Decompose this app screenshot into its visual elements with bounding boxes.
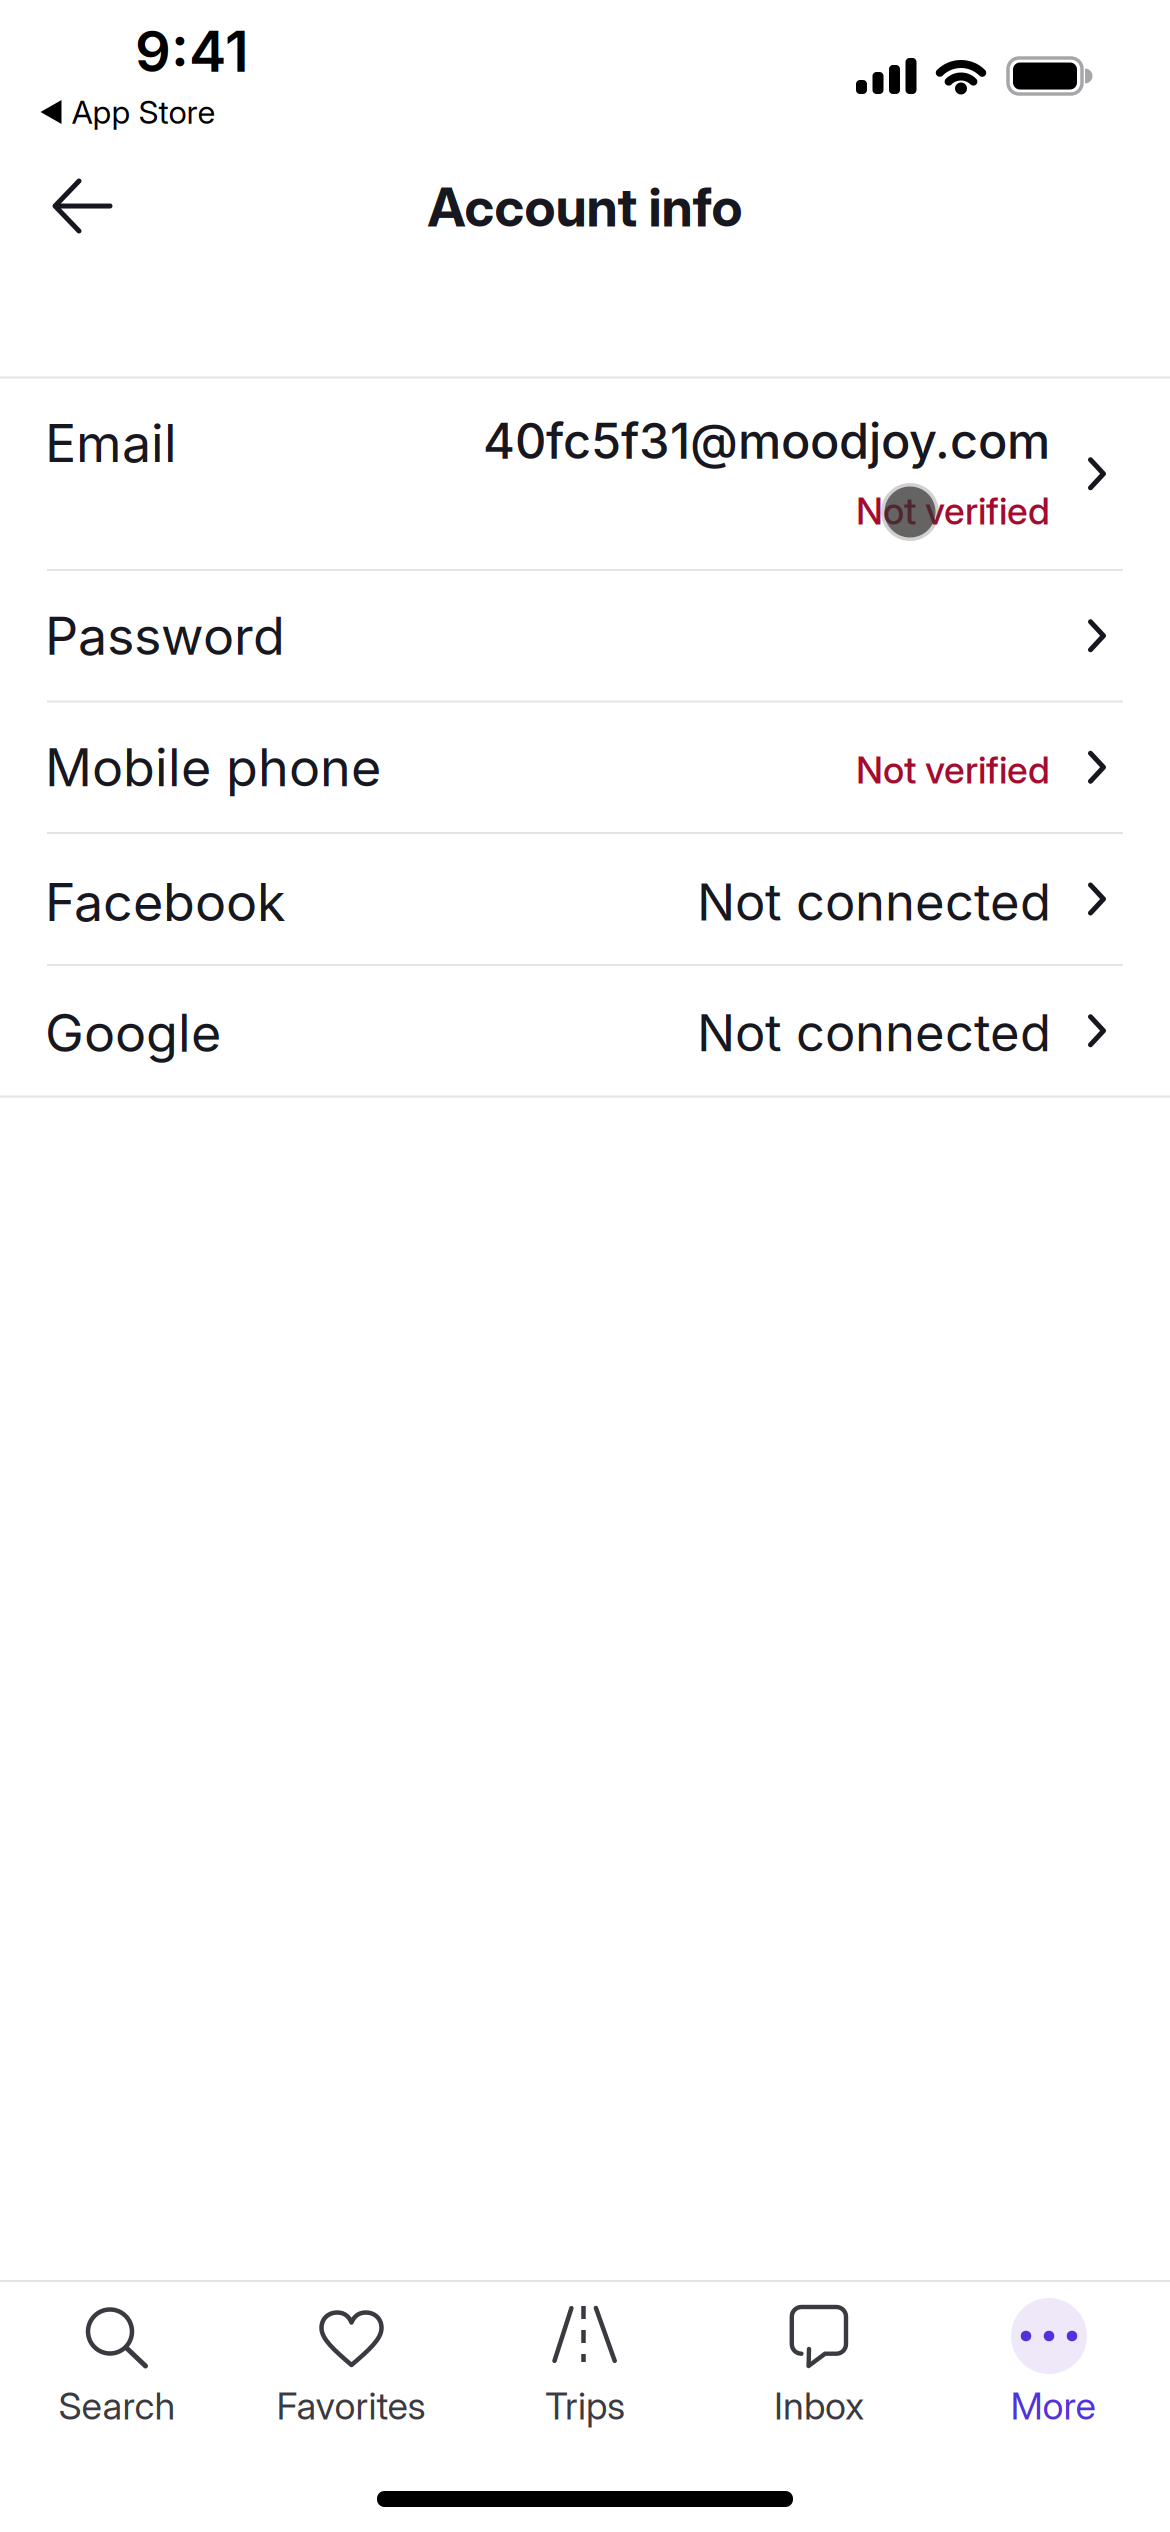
- button[interactable]: Password: [0, 570, 1170, 701]
- staticText: Not connected: [697, 1002, 1051, 1063]
- staticText: Inbox: [774, 2383, 864, 2429]
- staticText: 9:41: [135, 18, 249, 85]
- button[interactable]: Search: [0, 2281, 234, 2461]
- staticText: Email: [45, 411, 177, 474]
- button[interactable]: Facebook: [0, 833, 1170, 965]
- button[interactable]: Inbox: [702, 2281, 936, 2461]
- staticText: Mobile phone: [45, 736, 381, 799]
- staticText: App Store: [71, 93, 215, 131]
- button[interactable]: Back to App Store: [18, 84, 238, 140]
- staticText: Trips: [545, 2383, 625, 2429]
- button[interactable]: Favorites: [234, 2281, 468, 2461]
- button[interactable]: Trips: [468, 2281, 702, 2461]
- staticText: Facebook: [45, 870, 286, 933]
- staticText: Password: [45, 604, 285, 667]
- staticText: Not verified: [856, 488, 1050, 534]
- staticText: Not connected: [697, 871, 1051, 933]
- staticText: More: [1010, 2383, 1095, 2429]
- staticText: 40fc5f31@moodjoy.com: [483, 412, 1050, 470]
- staticText: Favorites: [276, 2383, 425, 2429]
- button[interactable]: Mobile phone: [0, 701, 1170, 833]
- staticText: Google: [45, 1001, 221, 1064]
- button[interactable]: Google: [0, 965, 1170, 1096]
- button[interactable]: Back: [30, 156, 130, 256]
- button[interactable]: Email: [0, 377, 1170, 570]
- staticText: Not verified: [856, 747, 1050, 793]
- staticText: Account info: [427, 175, 742, 239]
- staticText: Search: [58, 2383, 175, 2429]
- button[interactable]: More: [936, 2281, 1170, 2461]
